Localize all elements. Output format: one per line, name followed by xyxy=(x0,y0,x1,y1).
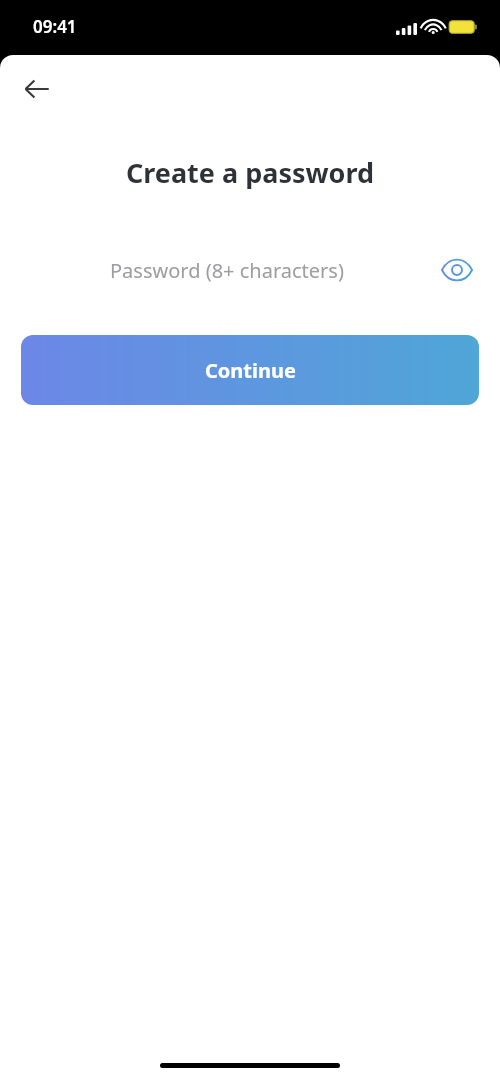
staticText: Continue xyxy=(205,357,296,384)
button[interactable]: Back xyxy=(14,66,60,112)
button[interactable]: Show password xyxy=(435,248,479,292)
staticText: 09:41 xyxy=(33,15,77,38)
staticText: Password (8+ characters) xyxy=(110,257,435,284)
button[interactable]: Password (8+ characters) xyxy=(21,243,479,297)
staticText: Create a password xyxy=(0,154,500,191)
button[interactable]: Continue xyxy=(21,335,479,405)
